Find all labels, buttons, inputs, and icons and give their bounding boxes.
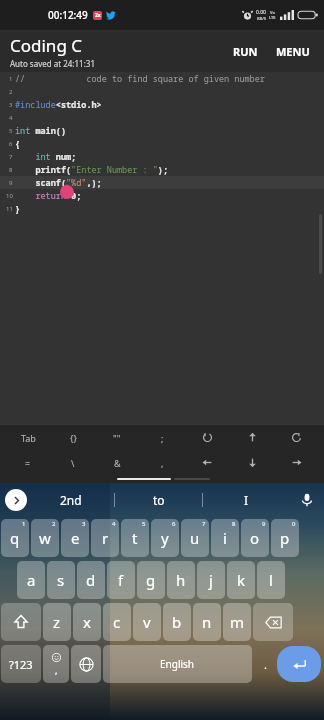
- button[interactable]: More suggestions: [5, 489, 27, 511]
- staticText: printf("Enter Number : ");: [15, 164, 169, 176]
- button[interactable]: Enter: [277, 646, 321, 682]
- staticText: 9: [9, 179, 13, 187]
- button[interactable]: 2nd: [27, 483, 114, 516]
- staticText: 2: [52, 520, 56, 528]
- staticText: int main(): [15, 125, 67, 137]
- button[interactable]: a: [17, 561, 45, 599]
- staticText: j: [209, 570, 213, 590]
- staticText: {: [15, 138, 21, 150]
- button[interactable]: l: [257, 561, 285, 599]
- staticText: u: [190, 528, 200, 548]
- button[interactable]: c: [103, 603, 131, 641]
- button[interactable]: =: [11, 450, 45, 475]
- staticText: w: [39, 528, 51, 548]
- staticText: 1: [22, 520, 26, 528]
- button[interactable]: ;: [145, 425, 179, 450]
- staticText: e: [71, 528, 80, 548]
- button[interactable]: o: [241, 519, 269, 557]
- staticText: 8: [9, 166, 13, 174]
- staticText: ?123: [9, 657, 33, 672]
- button[interactable]: v: [133, 603, 161, 641]
- staticText: f: [118, 570, 124, 590]
- staticText: t: [132, 528, 138, 548]
- staticText: 4: [112, 520, 116, 528]
- button[interactable]: r: [91, 519, 119, 557]
- button[interactable]: Change language: [71, 645, 101, 683]
- button[interactable]: Move right: [279, 450, 313, 475]
- button[interactable]: n: [193, 603, 221, 641]
- button[interactable]: Emoji and comma: [43, 645, 69, 683]
- button[interactable]: I: [203, 483, 290, 516]
- button[interactable]: d: [77, 561, 105, 599]
- button[interactable]: "": [100, 425, 134, 450]
- button[interactable]: Move up: [235, 425, 269, 450]
- button[interactable]: RUN: [227, 38, 264, 65]
- button[interactable]: ,: [145, 450, 179, 475]
- staticText: ,: [161, 457, 164, 469]
- button[interactable]: \: [56, 450, 90, 475]
- button[interactable]: y: [151, 519, 179, 557]
- button[interactable]: f: [107, 561, 135, 599]
- staticText: n: [202, 612, 212, 632]
- button[interactable]: English: [103, 645, 252, 683]
- button[interactable]: u: [181, 519, 209, 557]
- button[interactable]: g: [137, 561, 165, 599]
- staticText: c: [113, 612, 121, 632]
- button[interactable]: ?123: [1, 645, 41, 683]
- staticText: 3: [9, 101, 13, 109]
- button[interactable]: Period: [254, 645, 276, 683]
- staticText: p: [280, 528, 290, 548]
- button[interactable]: to: [115, 483, 202, 516]
- button[interactable]: MENU: [270, 38, 316, 65]
- button[interactable]: z: [43, 603, 71, 641]
- staticText: 5: [142, 520, 146, 528]
- staticText: I: [244, 492, 249, 508]
- staticText: q: [10, 528, 20, 548]
- staticText: y: [161, 528, 169, 548]
- staticText: 0: [292, 520, 296, 528]
- staticText: b: [172, 612, 182, 632]
- button[interactable]: s: [47, 561, 75, 599]
- button[interactable]: Tab: [11, 425, 45, 450]
- staticText: {}: [70, 432, 77, 444]
- button[interactable]: Voice input: [290, 483, 324, 516]
- button[interactable]: Backspace: [253, 603, 293, 641]
- button[interactable]: Redo: [279, 425, 313, 450]
- button[interactable]: t: [121, 519, 149, 557]
- button[interactable]: q: [1, 519, 29, 557]
- button[interactable]: &: [100, 450, 134, 475]
- button[interactable]: i: [211, 519, 239, 557]
- staticText: k: [237, 570, 246, 590]
- staticText: Tab: [21, 432, 36, 444]
- button[interactable]: k: [227, 561, 255, 599]
- button[interactable]: p: [271, 519, 299, 557]
- button[interactable]: Move down: [235, 450, 269, 475]
- staticText: r: [102, 528, 109, 548]
- staticText: .: [264, 657, 267, 672]
- staticText: i: [223, 528, 227, 548]
- button[interactable]: Shift: [1, 603, 41, 641]
- button[interactable]: m: [223, 603, 251, 641]
- button[interactable]: j: [197, 561, 225, 599]
- staticText: v: [143, 612, 151, 632]
- button[interactable]: Move left: [190, 450, 224, 475]
- button[interactable]: x: [73, 603, 101, 641]
- staticText: a: [27, 570, 36, 590]
- button[interactable]: b: [163, 603, 191, 641]
- button[interactable]: w: [31, 519, 59, 557]
- button[interactable]: Undo: [190, 425, 224, 450]
- staticText: "": [113, 432, 121, 444]
- staticText: g: [146, 570, 156, 590]
- staticText: 1: [9, 75, 13, 83]
- staticText: z: [53, 612, 61, 632]
- staticText: Vo: [270, 10, 275, 15]
- button[interactable]: e: [61, 519, 89, 557]
- staticText: 9: [262, 520, 266, 528]
- staticText: 10: [6, 192, 13, 200]
- staticText: 5: [9, 127, 13, 135]
- button[interactable]: {}: [56, 425, 90, 450]
- staticText: x: [83, 612, 91, 632]
- staticText: 4: [9, 114, 13, 122]
- staticText: d: [86, 570, 96, 590]
- button[interactable]: h: [167, 561, 195, 599]
